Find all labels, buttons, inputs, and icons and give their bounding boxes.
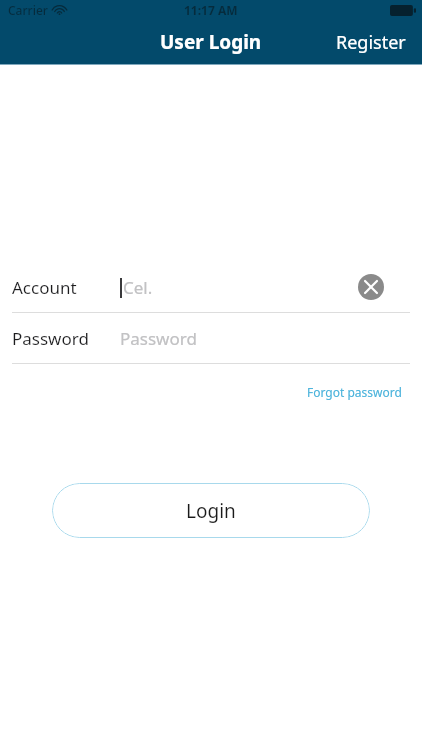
button[interactable]: Login xyxy=(52,483,370,538)
staticText: Password xyxy=(120,327,197,350)
staticText: 11:17 AM xyxy=(184,2,238,18)
staticText: Carrier xyxy=(8,2,48,18)
staticText: Password xyxy=(12,327,89,350)
button[interactable]: Clear account xyxy=(358,274,384,300)
staticText: Forgot password xyxy=(307,384,402,400)
button[interactable]: Forgot password xyxy=(307,382,422,402)
staticText: Cel. xyxy=(123,276,153,299)
staticText: Account xyxy=(12,276,77,299)
staticText: Login xyxy=(186,498,236,524)
button[interactable]: Register xyxy=(320,22,422,63)
staticText: User Login xyxy=(160,29,262,55)
staticText: Register xyxy=(336,30,406,55)
